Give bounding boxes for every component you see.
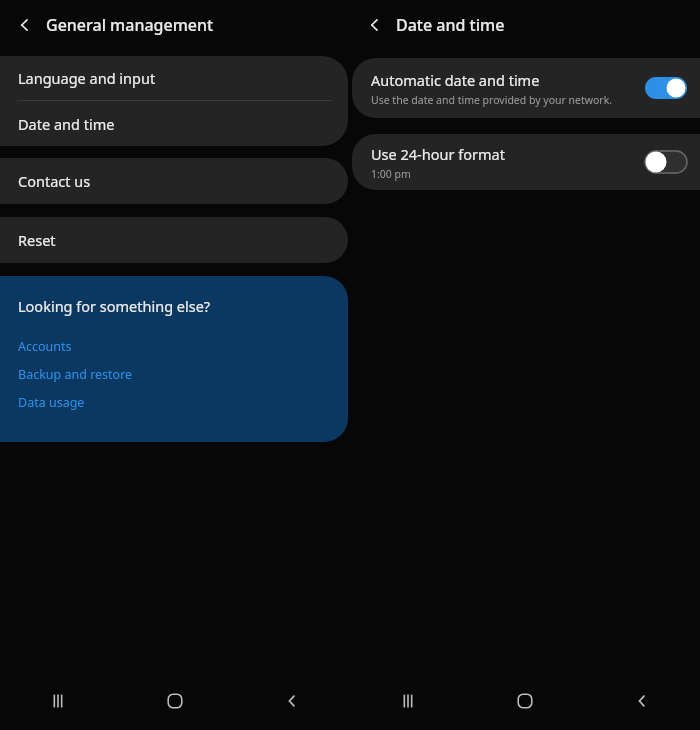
button[interactable]: Back	[583, 680, 700, 722]
staticText: Data usage	[18, 394, 85, 411]
staticText: Use 24-hour format	[371, 144, 505, 164]
button[interactable]: Use 24-hour format	[352, 134, 700, 190]
staticText: Backup and restore	[18, 366, 133, 383]
button[interactable]: Data usage	[18, 388, 348, 416]
button[interactable]: Backup and restore	[18, 360, 348, 388]
button[interactable]: Date and time	[0, 101, 348, 146]
staticText: Date and time	[396, 14, 505, 36]
button[interactable]: Toggle on	[645, 77, 687, 99]
button[interactable]: Recents	[0, 680, 116, 722]
button[interactable]: Recents	[350, 680, 466, 722]
staticText: General management	[46, 14, 214, 36]
button[interactable]: Accounts	[18, 332, 348, 360]
button[interactable]: Back	[10, 10, 40, 40]
button[interactable]: Contact us	[0, 158, 348, 204]
staticText: Contact us	[18, 171, 91, 191]
button[interactable]: Back	[233, 680, 350, 722]
staticText: Language and input	[18, 68, 156, 88]
button[interactable]: Home	[116, 680, 233, 722]
button[interactable]: Toggle off	[645, 151, 687, 173]
button[interactable]: Back	[360, 10, 390, 40]
staticText: Date and time	[18, 114, 115, 134]
button[interactable]: Reset	[0, 217, 348, 263]
button[interactable]: Home	[466, 680, 583, 722]
button[interactable]: Automatic date and time	[352, 58, 700, 118]
staticText: 1:00 pm	[371, 167, 411, 181]
staticText: Use the date and time provided by your n…	[371, 93, 613, 107]
button[interactable]: Language and input	[0, 56, 348, 100]
staticText: Automatic date and time	[371, 70, 540, 90]
staticText: Reset	[18, 230, 56, 250]
staticText: Looking for something else?	[18, 296, 211, 316]
staticText: Accounts	[18, 338, 72, 355]
